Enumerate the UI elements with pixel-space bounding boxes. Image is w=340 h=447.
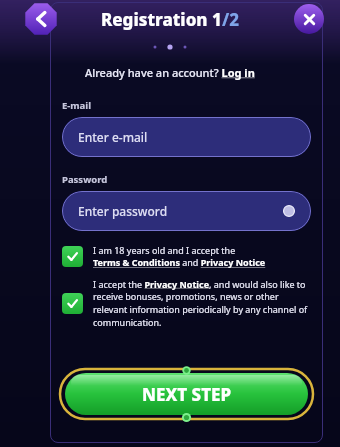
button[interactable]: Enter password [62,191,311,231]
staticText: Password [62,173,108,186]
staticText: Enter password [78,203,168,219]
staticText: E-mail [62,99,91,112]
staticText: I am 18 years old and I accept the Terms… [93,244,266,269]
staticText: Enter e-mail [78,129,148,145]
button[interactable]: Enter e-mail [62,117,311,157]
button[interactable]: Show password [281,203,297,219]
button[interactable]: I am 18 years old and I accept the Terms… [62,244,311,269]
staticText: Registration [101,8,212,31]
button[interactable]: NEXT STEP [60,368,313,420]
button[interactable]: Close [294,4,324,34]
button[interactable]: Already have an account? Log in [85,65,255,80]
button[interactable]: Back [24,2,58,36]
staticText: /2 [222,8,240,31]
staticText: I accept the Privacy Notice, and would a… [93,278,311,329]
staticText: 1 [212,8,222,31]
button[interactable]: I accept the Privacy Notice, and would a… [62,278,311,329]
staticText: NEXT STEP [142,383,232,406]
